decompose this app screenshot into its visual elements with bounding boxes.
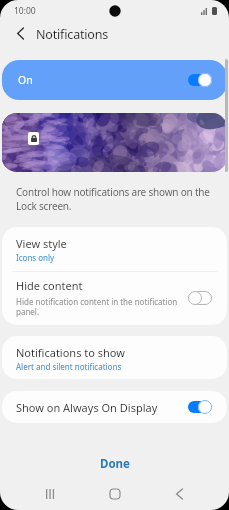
staticText: Hide notification content in the notific… bbox=[16, 296, 182, 318]
button[interactable]: View style bbox=[2, 227, 227, 271]
button[interactable]: Notifications to show bbox=[2, 336, 227, 379]
staticText: Notifications to show bbox=[16, 345, 125, 360]
button[interactable]: Show on Always On Display bbox=[2, 391, 227, 423]
button[interactable]: Toggle on bbox=[188, 73, 212, 87]
button[interactable]: On bbox=[2, 60, 227, 100]
staticText: Control how notifications are shown on t… bbox=[16, 185, 210, 213]
button[interactable]: Toggle on bbox=[188, 400, 212, 414]
staticText: On bbox=[18, 73, 33, 87]
staticText: Alert and silent notifications bbox=[16, 361, 122, 372]
staticText: Notifications bbox=[36, 26, 108, 43]
button[interactable]: Lock screen preview bbox=[2, 113, 227, 172]
staticText: Hide content bbox=[16, 278, 83, 293]
staticText: Icons only bbox=[16, 252, 55, 263]
staticText: Done bbox=[100, 456, 130, 472]
button[interactable]: Home bbox=[93, 478, 137, 510]
button[interactable]: Done bbox=[84, 451, 146, 477]
button[interactable]: Navigate up bbox=[9, 22, 31, 44]
button[interactable]: Hide content bbox=[2, 271, 227, 325]
button[interactable]: Recent apps bbox=[28, 478, 72, 510]
button[interactable]: Toggle off bbox=[188, 291, 212, 305]
staticText: Show on Always On Display bbox=[16, 400, 188, 415]
staticText: 10:00 bbox=[14, 5, 36, 17]
staticText: View style bbox=[16, 236, 67, 251]
button[interactable]: Back bbox=[157, 478, 201, 510]
